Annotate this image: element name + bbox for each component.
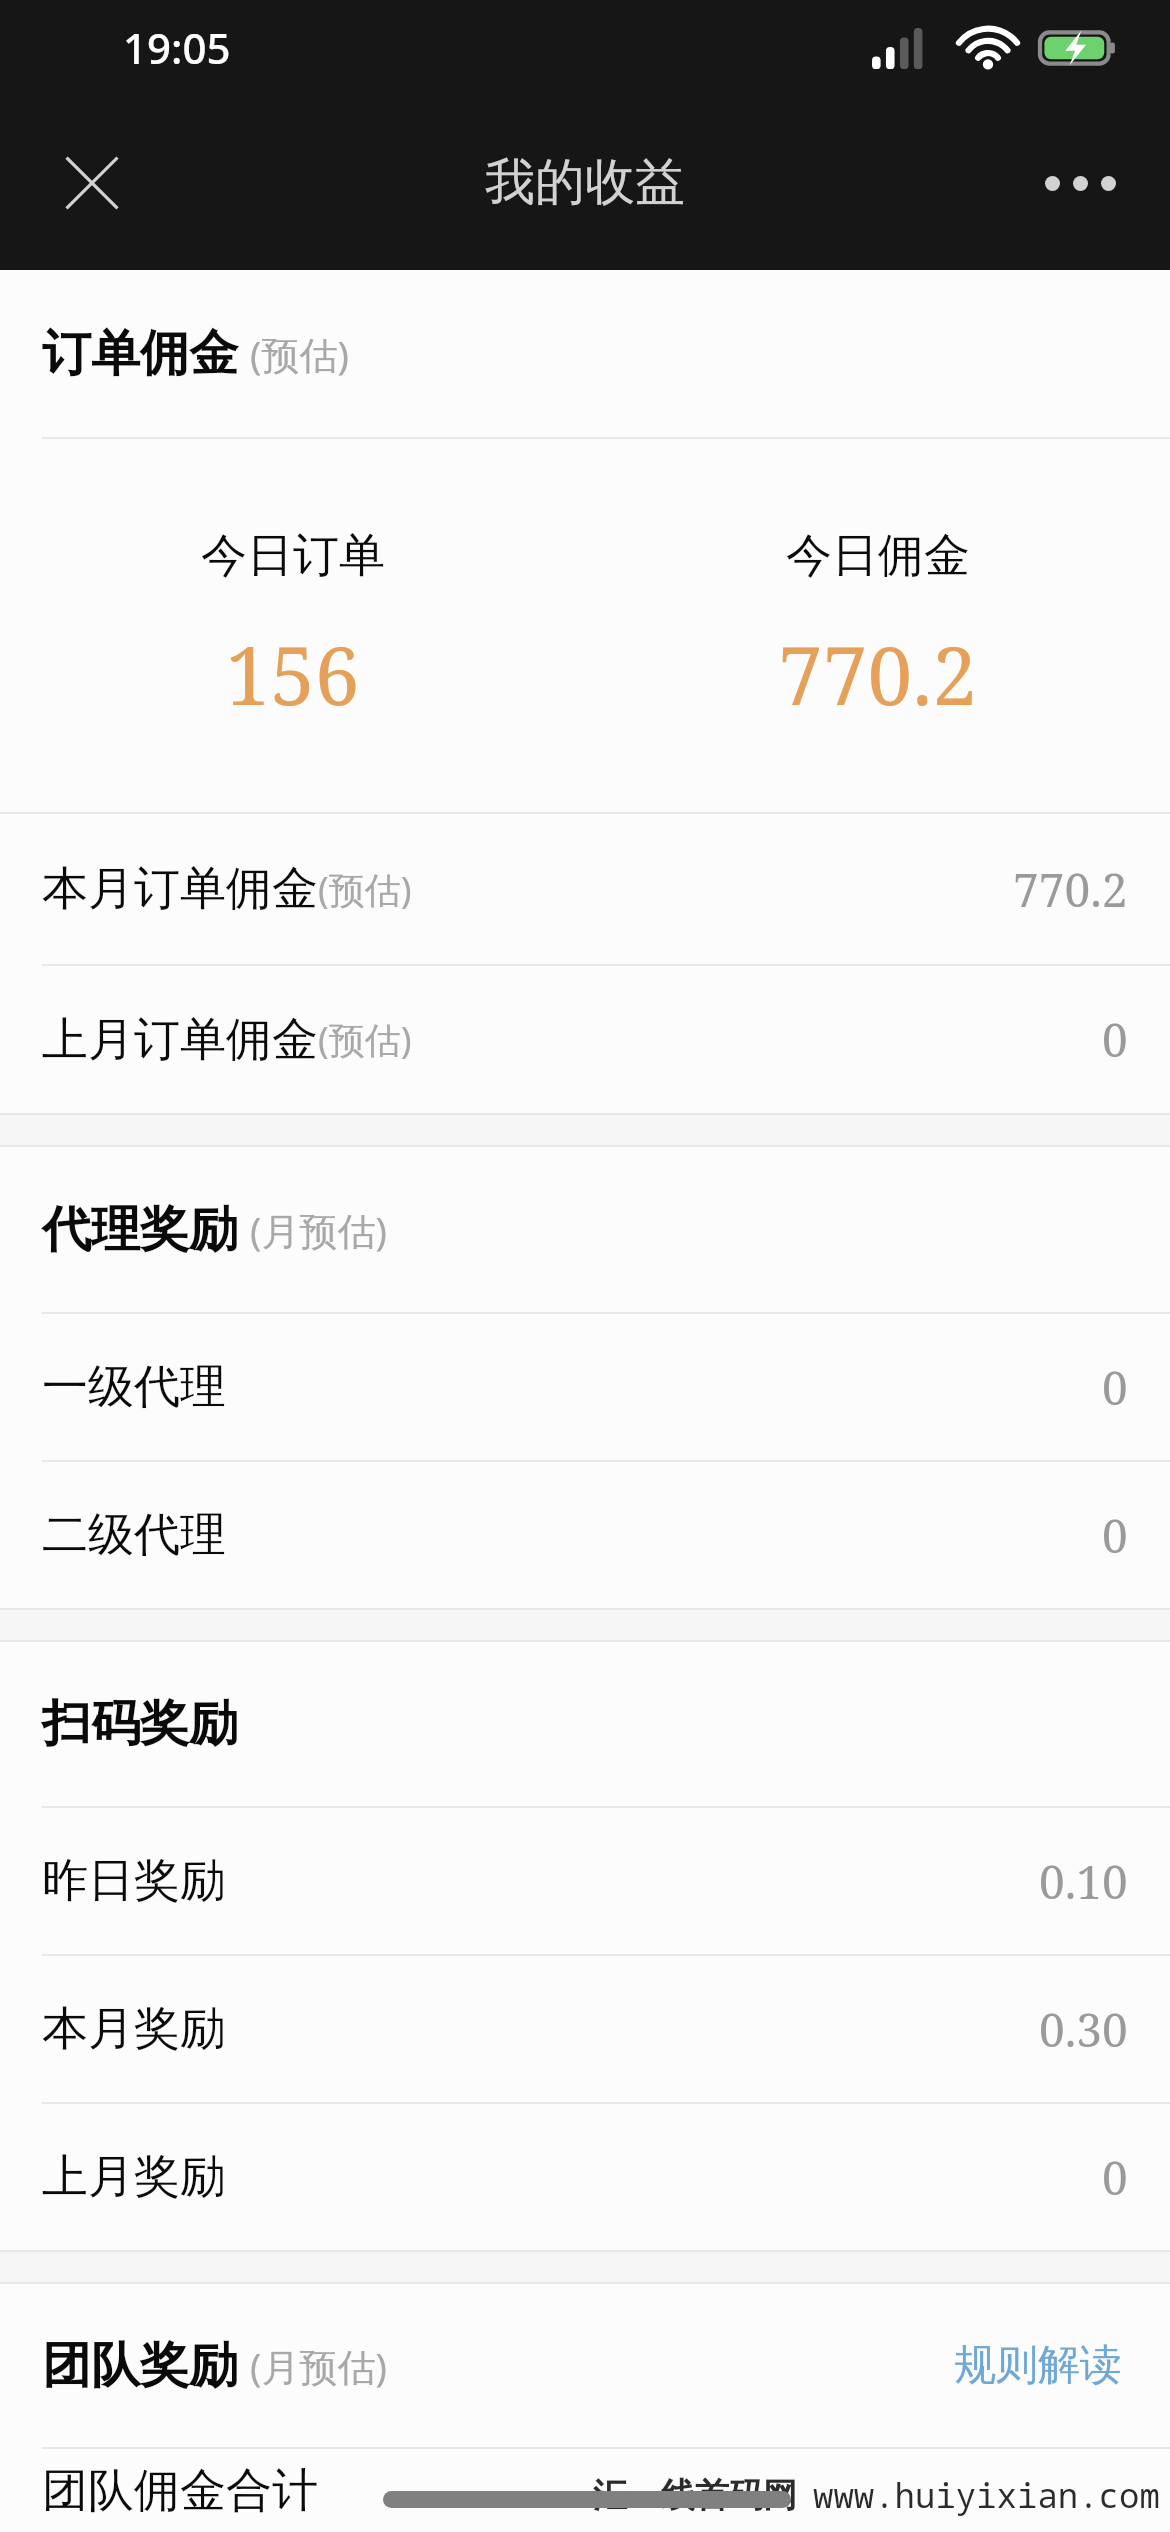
button[interactable]: 二级代理 <box>0 1462 1170 1608</box>
staticText: 订单佣金 <box>42 323 238 385</box>
staticText: 团队佣金合计 <box>42 2462 318 2520</box>
staticText: 0 <box>1102 1504 1128 1567</box>
staticText: 770.2 <box>778 619 977 728</box>
staticText: (月预估) <box>250 2340 387 2392</box>
staticText: 今日订单 <box>201 527 385 585</box>
staticText: 扫码奖励 <box>42 1693 238 1755</box>
button[interactable]: 一级代理 <box>0 1314 1170 1460</box>
button[interactable]: 今日佣金 <box>585 439 1170 812</box>
button[interactable]: 本月奖励 <box>0 1956 1170 2102</box>
staticText: 0 <box>1102 1008 1128 1071</box>
staticText: 一级代理 <box>42 1358 226 1416</box>
button[interactable]: 本月订单佣金 <box>0 814 1170 964</box>
button[interactable]: 今日订单 <box>0 439 585 812</box>
staticText: 上月订单佣金 <box>42 1011 318 1069</box>
staticText: 昨日奖励 <box>42 1852 226 1910</box>
staticText: 770.2 <box>1013 858 1128 921</box>
staticText: 代理奖励 <box>42 1199 238 1261</box>
button[interactable]: 上月订单佣金 <box>0 966 1170 1113</box>
staticText: (月预估) <box>250 1204 387 1256</box>
staticText: 本月订单佣金 <box>42 860 318 918</box>
button[interactable]: 昨日奖励 <box>0 1808 1170 1954</box>
staticText: 0.10 <box>1039 1850 1128 1913</box>
staticText: 上月奖励 <box>42 2148 226 2206</box>
staticText: (预估) <box>318 865 412 914</box>
staticText: 团队奖励 <box>42 2335 238 2397</box>
staticText: 二级代理 <box>42 1506 226 1564</box>
staticText: 0 <box>1102 1356 1128 1419</box>
staticText: (预估) <box>250 328 349 380</box>
staticText: 今日佣金 <box>786 527 970 585</box>
staticText: 本月奖励 <box>42 2000 226 2058</box>
button[interactable]: Close <box>44 135 140 231</box>
staticText: www.huiyixian.com <box>813 2472 1160 2518</box>
staticText: 19:05 <box>123 19 231 76</box>
button[interactable]: 规则解读 <box>948 2329 1128 2402</box>
staticText: (预估) <box>318 1015 412 1064</box>
staticText: 0 <box>1102 2146 1128 2209</box>
staticText: 0.30 <box>1039 1998 1128 2061</box>
staticText: 汇一线首码网 <box>593 2474 797 2517</box>
staticText: 156 <box>225 619 360 728</box>
button[interactable]: More options <box>1032 135 1128 231</box>
staticText: 规则解读 <box>954 2339 1122 2392</box>
button[interactable]: 上月奖励 <box>0 2104 1170 2250</box>
staticText: 我的收益 <box>485 151 685 214</box>
button[interactable]: 团队佣金合计 <box>0 2449 1170 2532</box>
